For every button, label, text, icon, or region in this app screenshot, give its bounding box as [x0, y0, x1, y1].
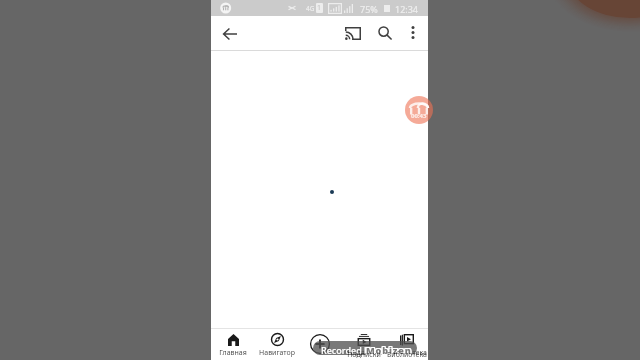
button[interactable]: Подписки: [342, 329, 385, 360]
staticText: 4G: [306, 4, 315, 13]
staticText: Библиотека: [387, 350, 427, 360]
staticText: Mobizen: [367, 344, 413, 355]
button[interactable]: More options: [399, 18, 427, 46]
button[interactable]: Back: [216, 20, 244, 48]
staticText: Mobizen: [366, 345, 412, 355]
button[interactable]: Библиотека: [385, 329, 428, 360]
button[interactable]: Search: [369, 17, 400, 48]
staticText: Навигатор: [259, 348, 295, 358]
staticText: Главная: [219, 348, 247, 358]
button[interactable]: Create: [299, 329, 342, 360]
staticText: Mobizen: [366, 343, 412, 355]
staticText: Подписки: [347, 350, 381, 360]
staticText: Библиотека: [387, 348, 427, 358]
staticText: Mobizen: [365, 343, 411, 355]
staticText: 00:43: [411, 112, 427, 120]
staticText: Подписки: [347, 348, 381, 358]
staticText: Recorded by: [321, 344, 375, 355]
staticText: 75%: [360, 3, 378, 15]
staticText: 12:34: [395, 3, 419, 15]
staticText: Mobizen: [365, 345, 411, 355]
staticText: Mobizen: [366, 344, 412, 355]
button[interactable]: Навигатор: [255, 329, 299, 360]
staticText: Mobizen: [365, 344, 411, 355]
staticText: 1: [317, 3, 322, 13]
button[interactable]: Главная: [211, 329, 255, 360]
staticText: Mobizen: [367, 343, 413, 355]
staticText: Mobizen: [367, 345, 413, 355]
button[interactable]: Cast: [337, 17, 369, 49]
